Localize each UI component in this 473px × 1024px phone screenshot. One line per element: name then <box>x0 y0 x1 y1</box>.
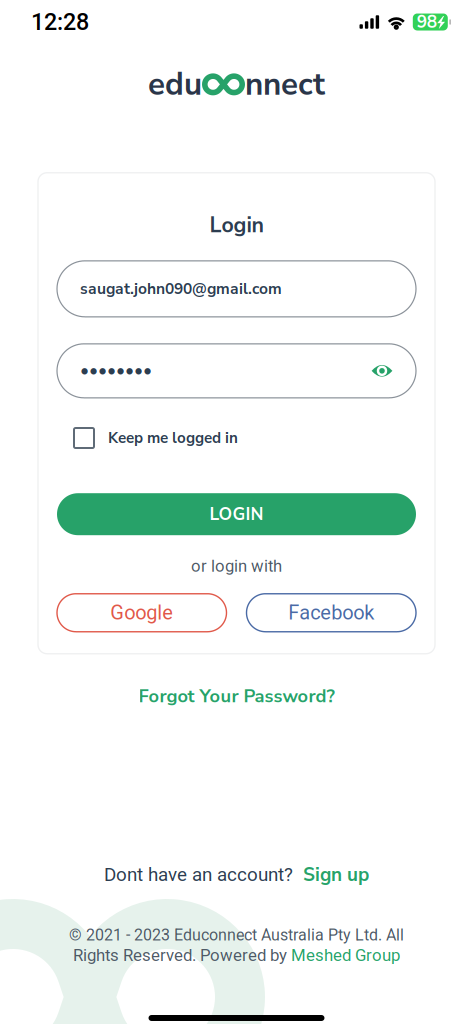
staticText: Dont have an account? <box>104 864 293 886</box>
staticText: Sign up <box>303 862 369 887</box>
staticText: Facebook <box>288 601 374 624</box>
staticText: 98 <box>417 10 437 34</box>
button[interactable]: Google <box>57 594 226 632</box>
staticText: Keep me logged in <box>108 428 238 448</box>
staticText: edu <box>148 63 202 106</box>
button[interactable]: Facebook <box>246 594 416 632</box>
staticText: saugat.john090@gmail.com <box>80 278 282 299</box>
button[interactable]: LOGIN <box>57 493 416 535</box>
button[interactable]: Keep me logged in <box>38 428 435 448</box>
staticText: 12:28 <box>31 8 89 36</box>
button[interactable]: Meshed Group <box>291 945 400 965</box>
staticText: Rights Reserved. Powered by <box>73 945 291 965</box>
staticText: Google <box>110 601 173 624</box>
button[interactable]: Forgot Your Password? <box>126 654 346 715</box>
staticText: Meshed Group <box>291 945 400 965</box>
staticText: Forgot Your Password? <box>138 684 334 709</box>
staticText: © 2021 - 2023 Educonnect Australia Pty L… <box>69 926 404 944</box>
staticText: LOGIN <box>209 502 263 526</box>
staticText: nnect <box>245 63 325 106</box>
staticText: Login <box>209 211 263 240</box>
staticText: •••••••• <box>80 359 152 383</box>
button[interactable]: Sign up <box>303 862 369 887</box>
staticText: or login with <box>191 556 282 576</box>
